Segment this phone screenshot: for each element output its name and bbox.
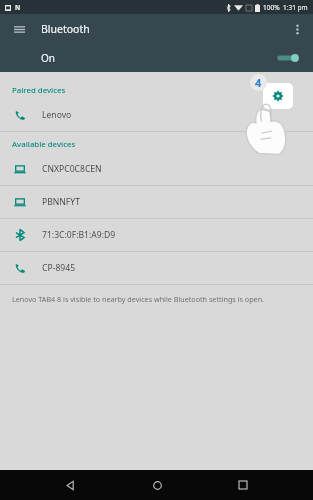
button[interactable]: More options (286, 18, 308, 40)
button[interactable]: On (0, 44, 313, 72)
staticText: 1:31 pm (283, 3, 308, 12)
staticText: Paired devices (12, 85, 66, 96)
staticText: PBNNFYT (42, 196, 80, 208)
button[interactable]: Recent apps (226, 470, 260, 500)
staticText: Lenovo (42, 109, 72, 121)
button[interactable]: Back (53, 470, 87, 500)
button[interactable]: Lenovo (0, 99, 313, 132)
button[interactable]: Device settings (263, 83, 293, 109)
button[interactable]: PBNNFYT (0, 186, 313, 219)
button[interactable]: 71:3C:0F:B1:A9:D9 (0, 219, 313, 252)
button[interactable]: CNXPC0C8CEN (0, 153, 313, 186)
staticText: 4 (255, 75, 262, 90)
staticText: CNXPC0C8CEN (42, 163, 102, 175)
staticText: CP-8945 (42, 262, 76, 274)
button[interactable]: Home (140, 470, 174, 500)
button[interactable]: Navigation menu (8, 18, 30, 40)
staticText: Lenovo TAB4 8 is visible to nearby devic… (12, 294, 265, 304)
staticText: On (41, 51, 55, 65)
button[interactable]: CP-8945 (0, 252, 313, 285)
staticText: 100% (263, 3, 280, 12)
staticText: 71:3C:0F:B1:A9:D9 (42, 229, 116, 241)
staticText: N (15, 3, 21, 12)
staticText: Bluetooth (41, 22, 90, 36)
staticText: Available devices (12, 139, 76, 150)
